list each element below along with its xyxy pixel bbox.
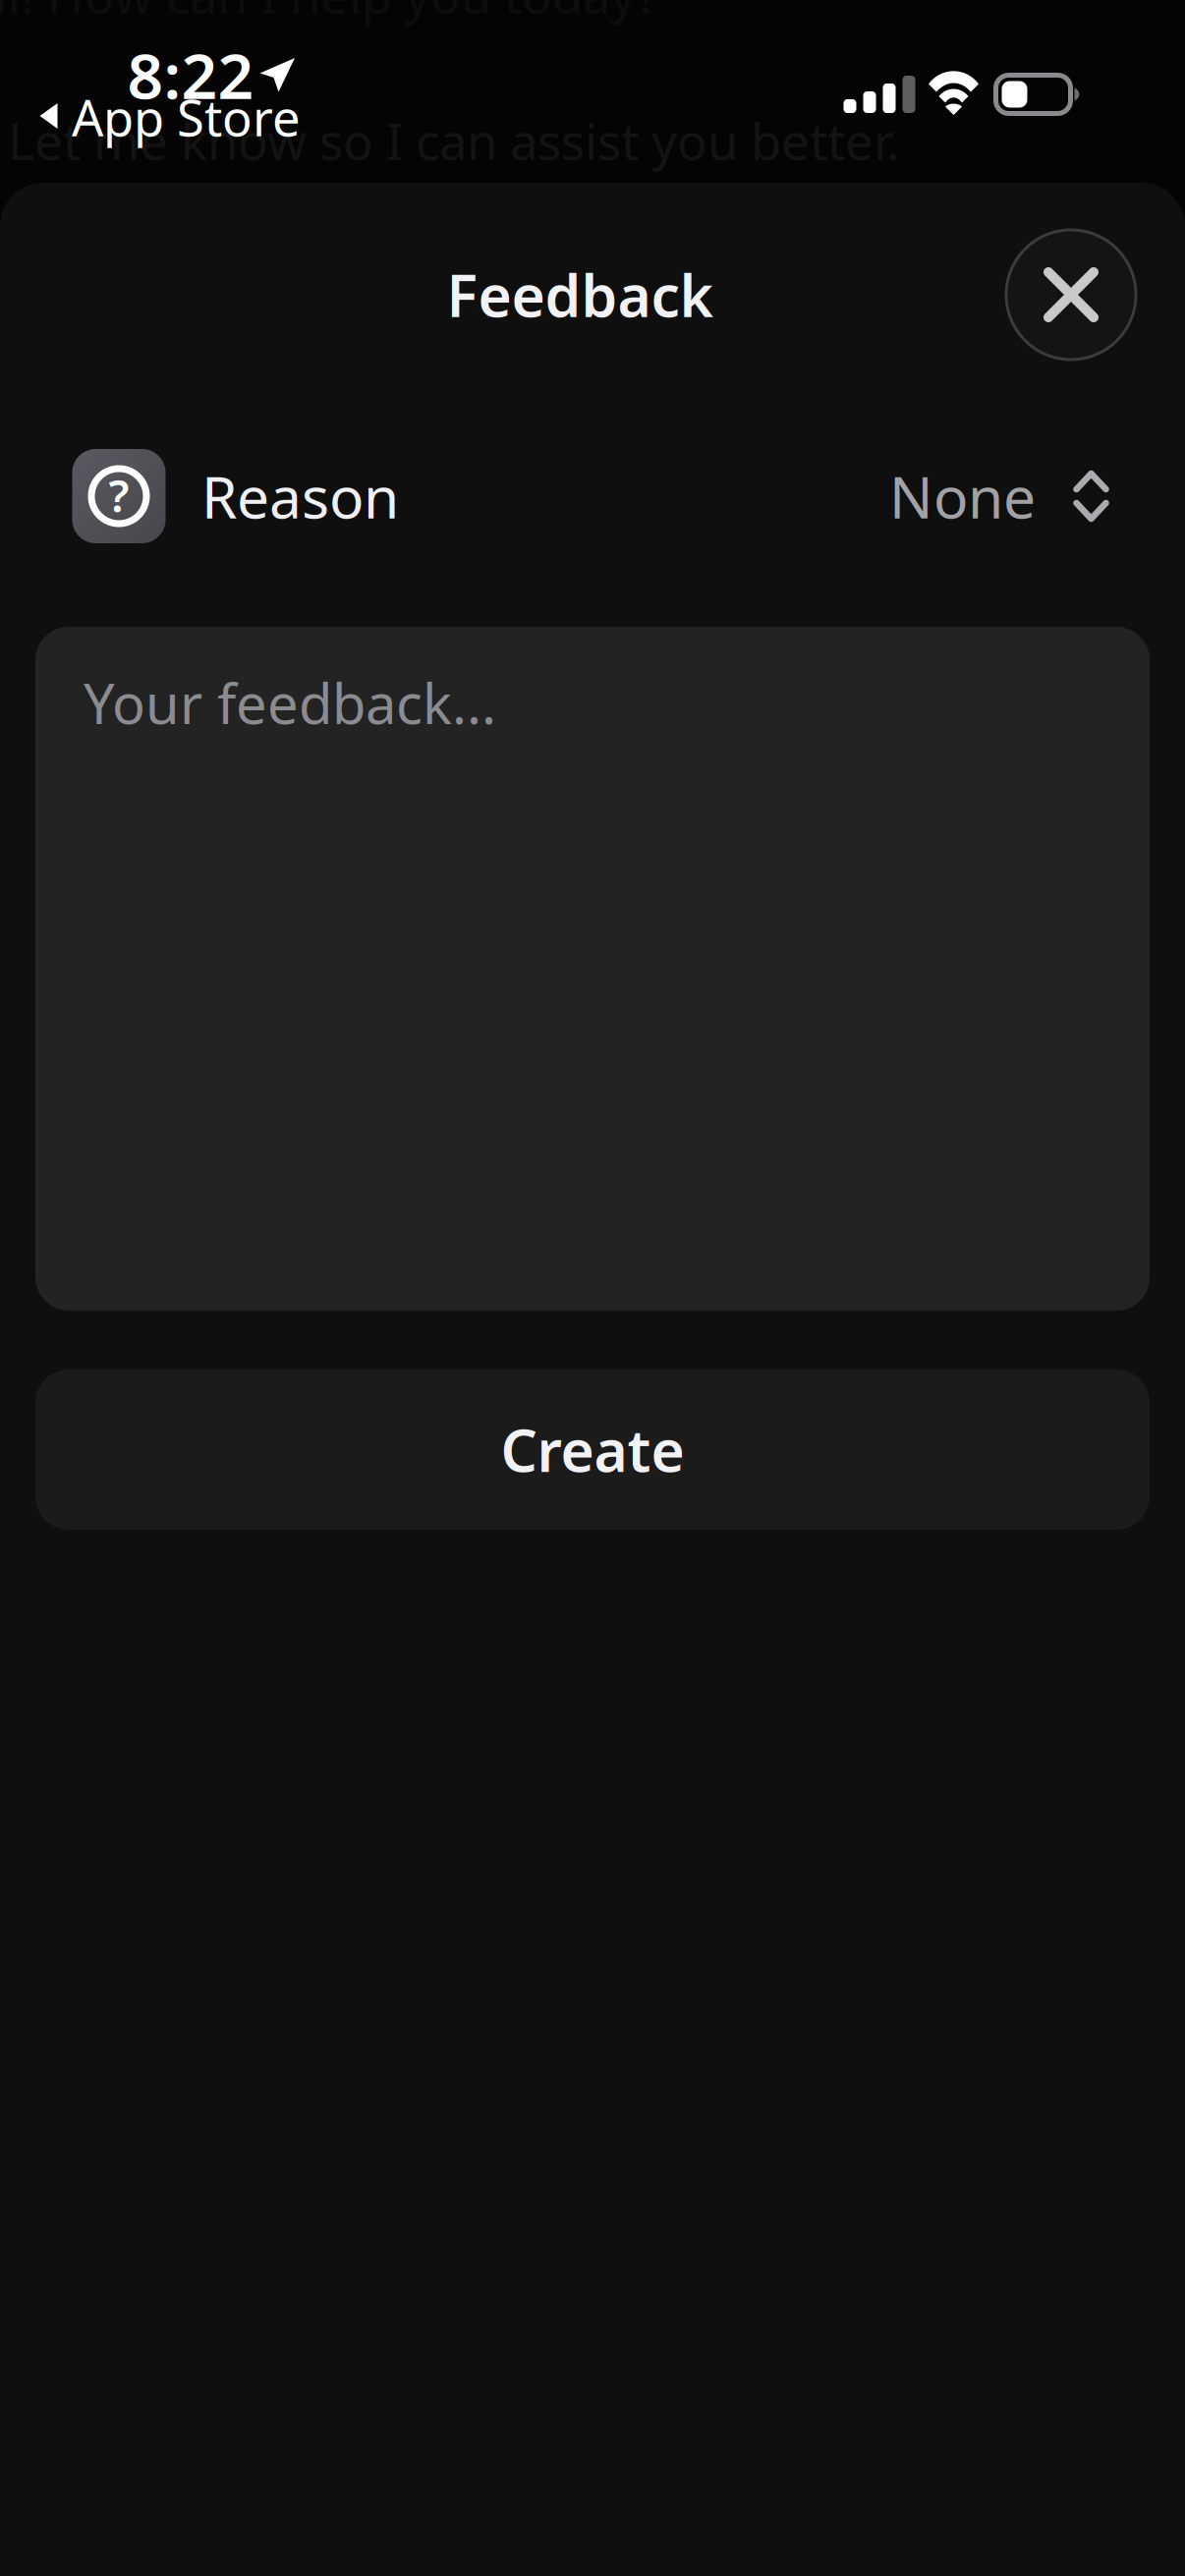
staticText: Create: [501, 1411, 684, 1488]
button[interactable]: Your feedback...: [35, 627, 1150, 1311]
staticText: Your feedback...: [84, 666, 496, 739]
button[interactable]: Create: [35, 1370, 1150, 1530]
staticText: Reason: [201, 458, 399, 534]
staticText: 8:22: [127, 33, 254, 116]
staticText: App Store: [72, 84, 301, 150]
staticText: None: [889, 458, 1036, 534]
staticText: ?: [109, 466, 129, 525]
staticText: Hi! How can I help you today?: [0, 0, 658, 27]
staticText: Feedback: [447, 256, 713, 333]
button[interactable]: Close: [1006, 230, 1136, 360]
staticText: Let me know so I can assist you better.: [8, 107, 900, 174]
button[interactable]: ?: [35, 427, 1150, 565]
